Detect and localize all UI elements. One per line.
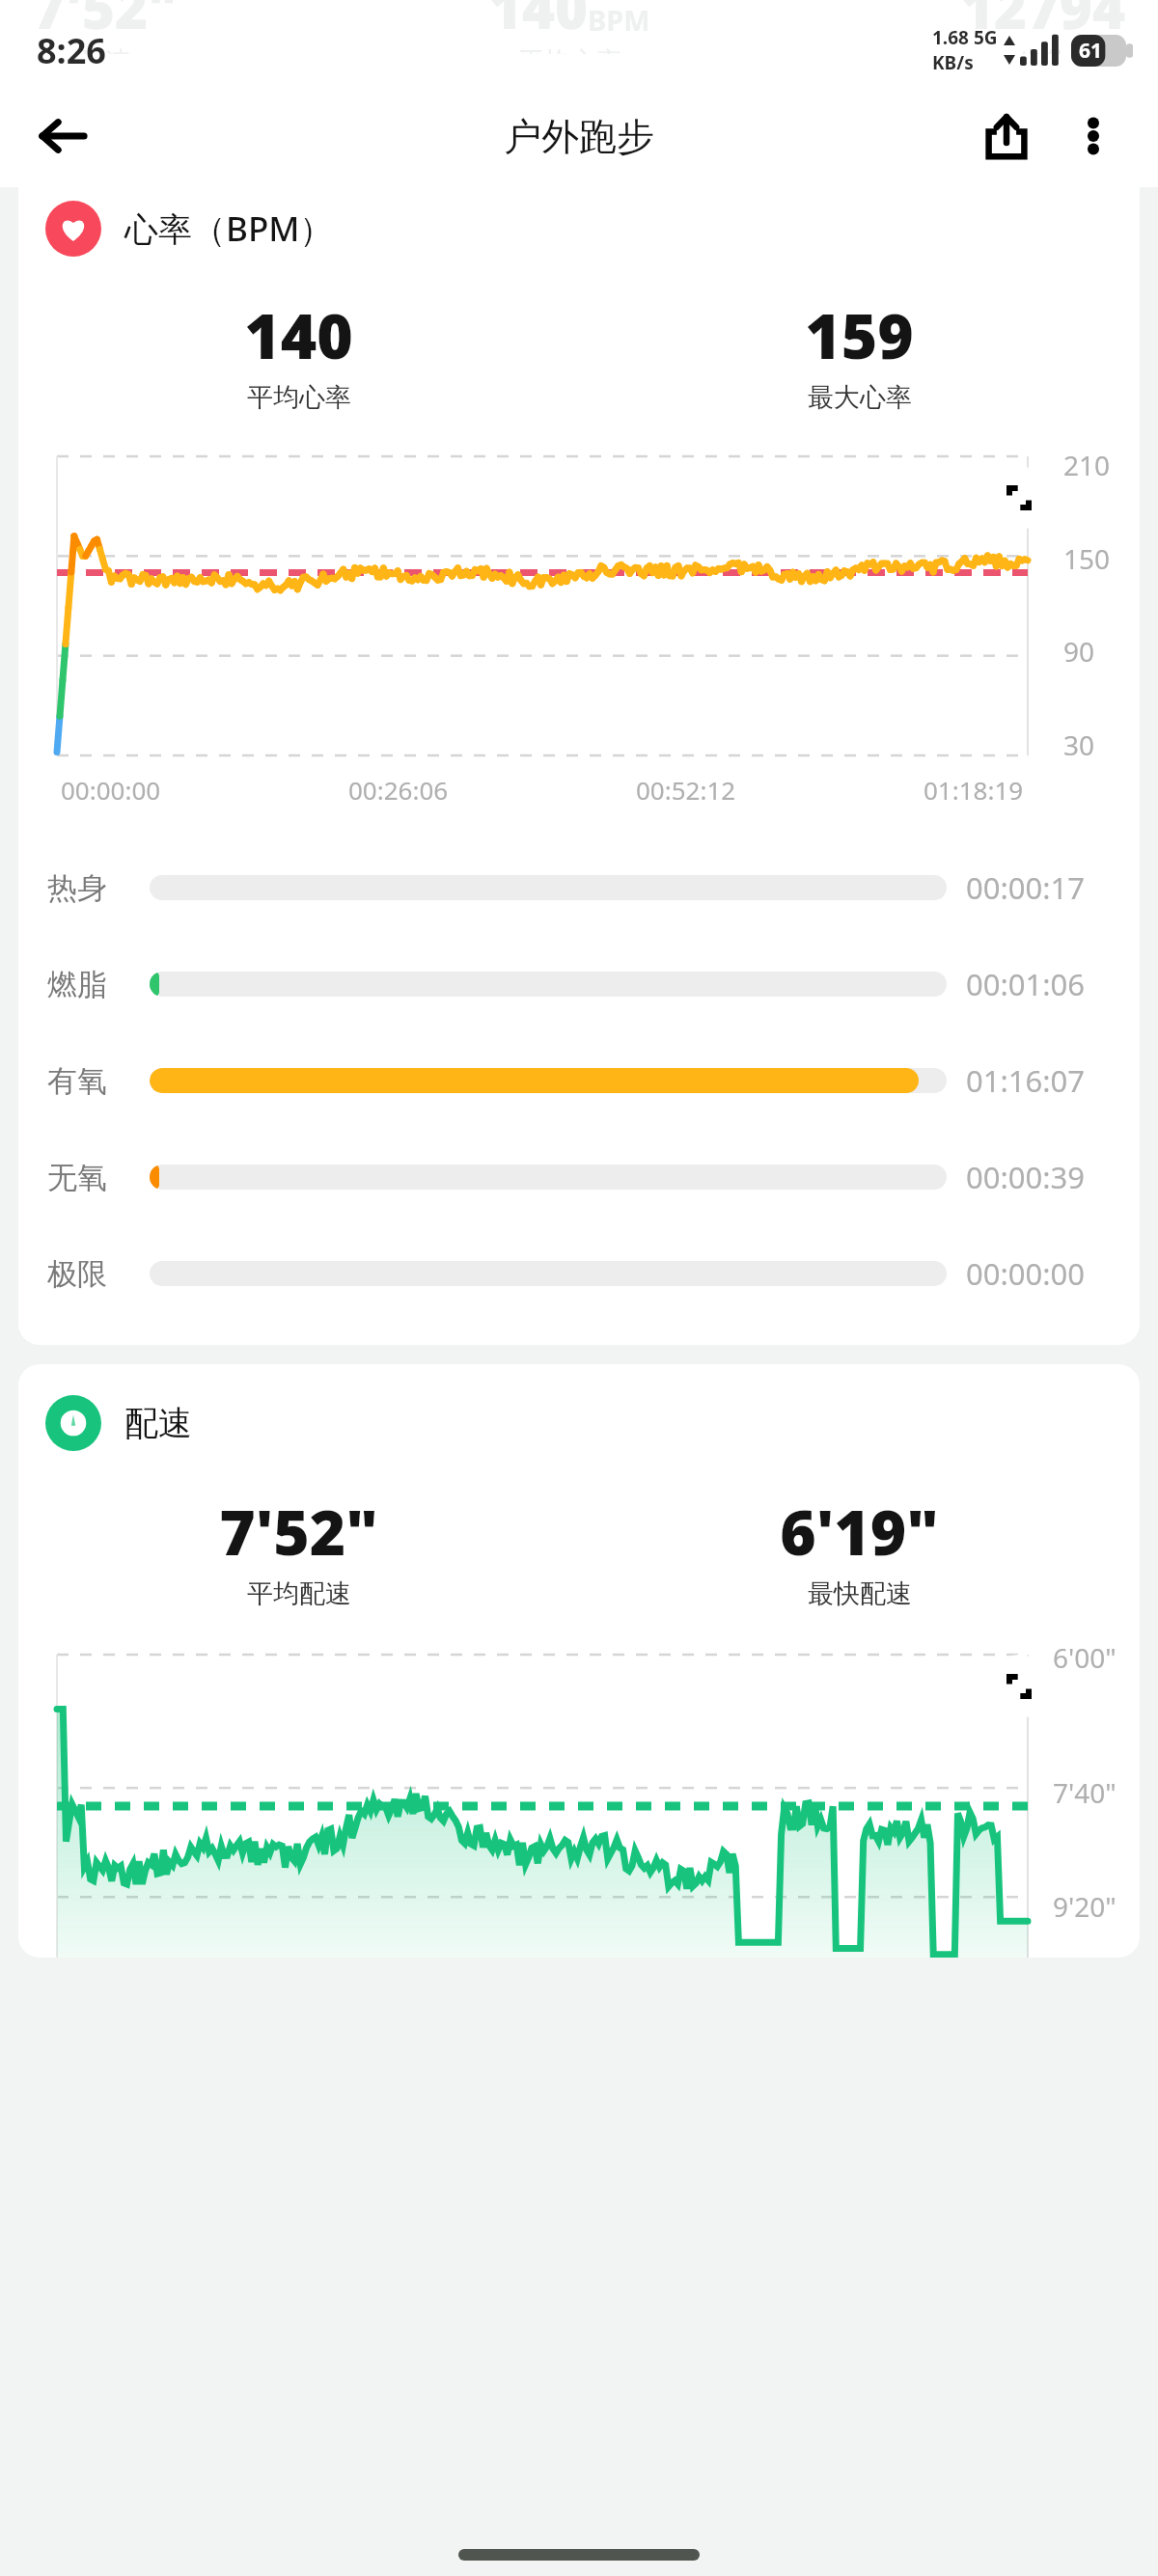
staticText: 01:16:07 [966, 1060, 1111, 1101]
staticText: 配速 [79, 45, 131, 54]
staticText: 1.68 5G [932, 25, 998, 50]
staticText: 159 [805, 293, 914, 377]
button[interactable]: More options [1050, 93, 1137, 179]
staticText: 00:00:00 [61, 773, 161, 807]
staticText: 无氧 [47, 1159, 150, 1196]
staticText: 有氧 [47, 1062, 150, 1100]
staticText: 210 [1063, 447, 1111, 483]
staticText: 00:00:17 [966, 867, 1111, 908]
staticText: 7'52" [219, 1490, 378, 1574]
staticText: 步数 [1017, 45, 1069, 54]
staticText: 热身 [47, 869, 150, 907]
staticText: 9'20" [1053, 1888, 1117, 1925]
staticText: 8:26 [37, 27, 106, 74]
staticText: 心率（BPM） [124, 206, 334, 252]
staticText: 150 [1063, 540, 1111, 577]
staticText: 30 [1063, 726, 1095, 763]
staticText: 00:00:00 [966, 1253, 1111, 1294]
button[interactable]: Fullscreen chart [987, 466, 1051, 530]
staticText: 140 [244, 293, 353, 377]
staticText: 燃脂 [47, 966, 150, 1003]
button[interactable]: Fullscreen chart [987, 1655, 1051, 1718]
staticText: 140 [489, 0, 588, 45]
staticText: 平均配速 [247, 1577, 351, 1610]
staticText: 户外跑步 [504, 113, 654, 160]
staticText: 61 [1079, 37, 1103, 65]
staticText: 平均心率 [518, 45, 622, 54]
staticText: 6'00" [1053, 1639, 1117, 1676]
staticText: 90 [1063, 633, 1095, 670]
staticText: 00:52:12 [636, 773, 736, 807]
staticText: 平均心率 [247, 381, 351, 414]
button[interactable]: Share [963, 93, 1050, 179]
staticText: KB/s [932, 50, 974, 75]
staticText: 00:00:39 [966, 1157, 1111, 1197]
staticText: 极限 [47, 1255, 150, 1293]
staticText: BPM [588, 1, 650, 39]
button[interactable]: Back [19, 93, 106, 179]
staticText: 00:01:06 [966, 964, 1111, 1004]
staticText: 6'19" [780, 1490, 939, 1574]
staticText: 7'40" [1053, 1774, 1117, 1811]
staticText: 7'52" [33, 0, 178, 45]
staticText: 配速 [124, 1402, 192, 1444]
staticText: 最大心率 [808, 381, 912, 414]
staticText: 最快配速 [808, 1577, 912, 1610]
staticText: 12794 [961, 0, 1125, 45]
staticText: 01:18:19 [924, 773, 1024, 807]
staticText: 00:26:06 [348, 773, 449, 807]
